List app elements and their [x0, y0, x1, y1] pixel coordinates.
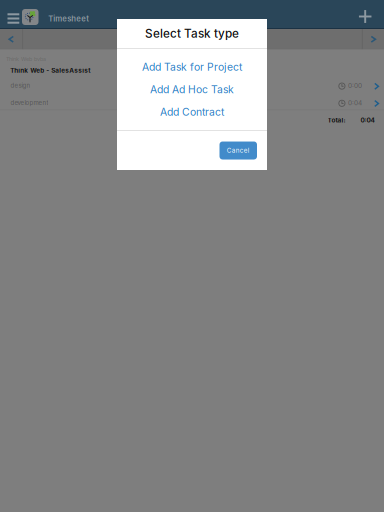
staticText: Total: [328, 116, 346, 124]
staticText: 0:04 [361, 116, 375, 124]
button[interactable]: Cancel [219, 141, 257, 159]
staticText: design [10, 82, 30, 89]
staticText: 0:00 [348, 82, 362, 90]
staticText: 0:04 [348, 99, 362, 107]
button[interactable]: development [0, 96, 384, 113]
staticText: Timesheet [48, 14, 89, 23]
staticText: Add Ad Hoc Task [150, 83, 234, 96]
button[interactable]: Add [353, 2, 377, 31]
staticText: Cancel [227, 147, 250, 154]
button[interactable]: Previous [0, 29, 22, 49]
staticText: Think Web - SalesAssist [10, 67, 90, 74]
button[interactable]: Add Ad Hoc Task [117, 78, 267, 101]
button[interactable]: Add Task for Project [117, 56, 267, 78]
button[interactable]: design [0, 79, 384, 96]
staticText: Add Task for Project [142, 61, 242, 73]
button[interactable]: Next [363, 29, 384, 49]
button[interactable]: Add Contract [117, 101, 267, 123]
button[interactable]: Menu [2, 4, 24, 33]
staticText: Select Task type [145, 26, 239, 41]
staticText: Add Contract [160, 106, 224, 118]
staticText: development [10, 99, 48, 106]
staticText: Think Web bvba [6, 56, 46, 62]
